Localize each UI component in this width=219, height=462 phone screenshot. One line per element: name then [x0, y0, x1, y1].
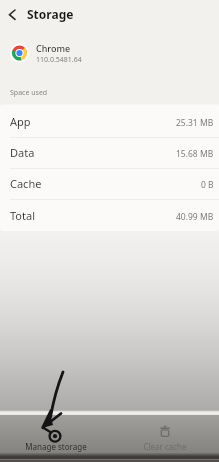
staticText: Storage [27, 6, 74, 22]
button[interactable] [112, 419, 215, 453]
button[interactable] [0, 107, 219, 138]
button[interactable] [2, 4, 24, 26]
staticText: Data [10, 145, 35, 160]
staticText: Cache [10, 176, 42, 191]
button[interactable] [3, 419, 106, 453]
staticText: 25.31 MB [176, 117, 214, 129]
staticText: Total [10, 208, 35, 223]
staticText: 0 B [201, 179, 214, 191]
staticText: 15.68 MB [176, 148, 214, 160]
staticText: 40.99 MB [176, 211, 214, 223]
staticText: Chrome [36, 42, 71, 54]
button[interactable] [0, 138, 219, 169]
staticText: Space used [10, 88, 48, 98]
button[interactable] [0, 201, 219, 232]
staticText: Manage storage [25, 441, 87, 452]
staticText: Clear cache [143, 441, 187, 452]
button[interactable] [0, 169, 219, 200]
staticText: 110.0.5481.64 [36, 55, 82, 65]
staticText: App [10, 114, 31, 129]
